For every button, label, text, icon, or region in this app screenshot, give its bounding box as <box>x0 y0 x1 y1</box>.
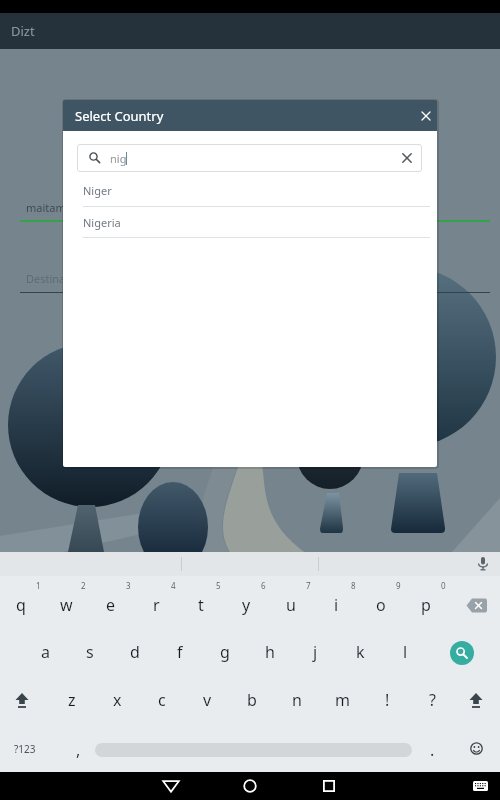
button[interactable] <box>323 780 335 792</box>
staticText: 0 <box>441 580 446 591</box>
button[interactable]: z <box>56 687 88 713</box>
button[interactable] <box>14 693 30 708</box>
staticText: u <box>286 594 296 616</box>
button[interactable]: n <box>281 687 313 713</box>
staticText: l <box>403 641 408 663</box>
staticText: ! <box>385 689 390 711</box>
button[interactable]: t <box>185 592 217 618</box>
staticText: 1 <box>36 580 41 591</box>
staticText: i <box>334 594 339 616</box>
button[interactable]: o <box>365 592 397 618</box>
staticText: 3 <box>126 580 131 591</box>
staticText: b <box>247 689 257 711</box>
button[interactable] <box>417 107 435 125</box>
button[interactable]: d <box>119 639 151 665</box>
staticText: k <box>356 641 365 663</box>
button[interactable]: v <box>191 687 223 713</box>
button[interactable]: e <box>95 592 127 618</box>
button[interactable]: l <box>389 639 421 665</box>
staticText: y <box>242 594 251 616</box>
button[interactable]: ? <box>416 687 448 713</box>
button[interactable] <box>468 693 484 708</box>
button[interactable]: nig <box>77 144 422 172</box>
button[interactable] <box>466 598 488 613</box>
staticText: z <box>68 689 76 711</box>
staticText: ?123 <box>14 742 36 756</box>
button[interactable]: i <box>320 592 352 618</box>
staticText: v <box>203 689 212 711</box>
button[interactable]: m <box>326 687 358 713</box>
staticText: 6 <box>261 580 266 591</box>
staticText: Destination <box>26 271 86 286</box>
button[interactable]: b <box>236 687 268 713</box>
staticText: o <box>376 594 386 616</box>
staticText: x <box>113 689 122 711</box>
staticText: . <box>430 739 435 761</box>
staticText: 4 <box>171 580 176 591</box>
staticText: 5 <box>216 580 221 591</box>
button[interactable]: q <box>5 592 37 618</box>
button[interactable]: f <box>164 639 196 665</box>
staticText: 9 <box>396 580 401 591</box>
button[interactable]: u <box>275 592 307 618</box>
button[interactable] <box>470 742 483 755</box>
button[interactable] <box>162 780 180 793</box>
button[interactable]: x <box>101 687 133 713</box>
button[interactable]: Nigeria <box>63 207 437 237</box>
button[interactable]: ?123 <box>6 736 44 762</box>
button[interactable]: g <box>209 639 241 665</box>
staticText: Select Country <box>75 107 164 125</box>
button[interactable]: r <box>140 592 172 618</box>
button[interactable]: s <box>74 639 106 665</box>
staticText: , <box>76 739 81 761</box>
button[interactable]: w <box>50 592 82 618</box>
staticText: q <box>16 594 26 616</box>
staticText: e <box>106 594 116 616</box>
button[interactable]: p <box>410 592 442 618</box>
staticText: m <box>335 689 350 711</box>
button[interactable]: y <box>230 592 262 618</box>
staticText: Niger <box>83 183 112 198</box>
staticText: h <box>265 641 275 663</box>
button[interactable] <box>473 781 488 792</box>
staticText: r <box>153 594 160 616</box>
button[interactable]: h <box>254 639 286 665</box>
staticText: 2 <box>81 580 86 591</box>
staticText: d <box>130 641 140 663</box>
button[interactable]: a <box>29 639 61 665</box>
staticText: Dizt <box>11 22 35 40</box>
staticText: Nigeria <box>83 215 121 230</box>
staticText: ? <box>429 689 436 711</box>
button[interactable] <box>450 641 474 665</box>
button[interactable]: , <box>62 737 94 763</box>
staticText: t <box>198 594 204 616</box>
staticText: maitama <box>26 200 72 215</box>
staticText: g <box>220 641 230 663</box>
staticText: a <box>41 641 50 663</box>
button[interactable]: Niger <box>63 175 437 206</box>
button[interactable]: . <box>416 737 448 763</box>
button[interactable]: ! <box>371 687 403 713</box>
staticText: f <box>177 641 183 663</box>
staticText: w <box>60 594 73 616</box>
button[interactable]: k <box>344 639 376 665</box>
staticText: p <box>421 594 431 616</box>
staticText: 8 <box>351 580 356 591</box>
staticText: s <box>86 641 94 663</box>
staticText: j <box>313 641 318 663</box>
staticText: nig <box>110 151 127 166</box>
button[interactable]: j <box>299 639 331 665</box>
staticText: n <box>292 689 302 711</box>
button[interactable]: c <box>146 687 178 713</box>
staticText: 7 <box>306 580 311 591</box>
staticText: c <box>158 689 166 711</box>
button[interactable] <box>243 779 257 793</box>
